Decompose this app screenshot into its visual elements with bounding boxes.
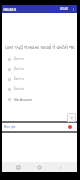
staticText: પ્રશ્ન અહીં લખવામાં આવશે તે વાંચીને જવાબ… (5, 44, 75, 50)
staticText: No Answer (14, 97, 33, 102)
button[interactable]: Close ad (67, 113, 76, 122)
staticText: x (71, 116, 73, 120)
staticText: વિકલ્પ (14, 67, 24, 71)
button[interactable]: વિકલ્પ (2, 84, 77, 94)
button[interactable]: વિકલ્પ (2, 74, 77, 84)
staticText: સ્વાધ્યાય (3, 6, 16, 13)
staticText: 00:30 (60, 7, 69, 11)
button[interactable]: Timer (60, 5, 69, 13)
button[interactable]: Recents (14, 163, 23, 172)
button[interactable]: વિકલ્પ (2, 64, 77, 74)
button[interactable]: વિકલ્પ (2, 54, 77, 64)
button[interactable]: Home (35, 163, 44, 172)
button[interactable]: More options (70, 6, 76, 12)
staticText: વિકલ્પ (14, 57, 24, 61)
button[interactable]: Back (56, 163, 65, 172)
staticText: વિકલ્પ (14, 87, 24, 91)
staticText: વિકલ્પ (14, 77, 24, 81)
button[interactable]: No Answer (2, 94, 77, 104)
staticText: ‹ (60, 164, 62, 171)
staticText: Nice job (4, 125, 16, 129)
